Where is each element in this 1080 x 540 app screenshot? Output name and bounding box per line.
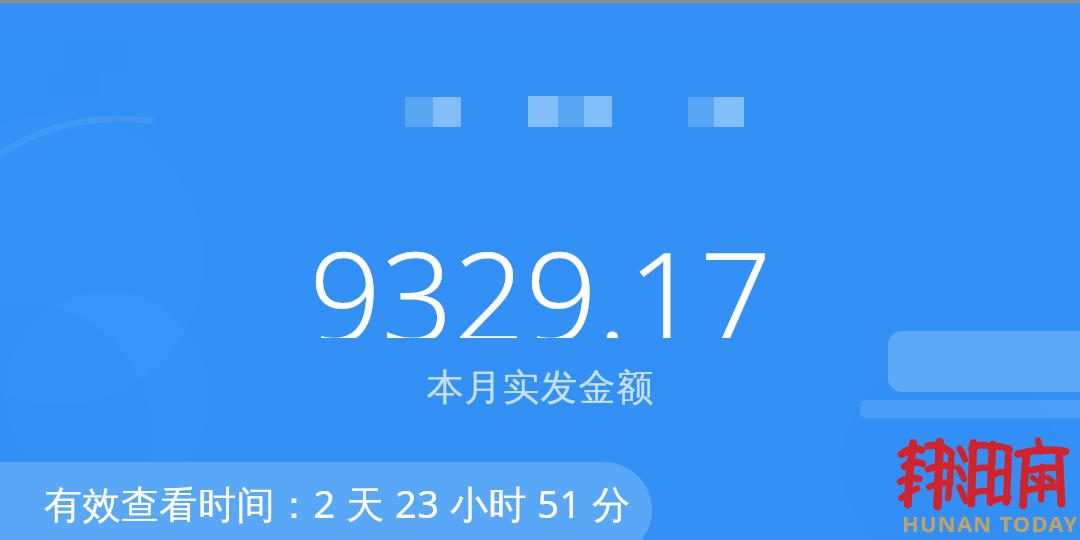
staticText: 有效查看时间：2 天 23 小时 51 分 (44, 477, 631, 529)
staticText: 本月实发金额 (426, 364, 654, 411)
staticText: HUNAN TODAY (902, 508, 1079, 538)
button[interactable]: 9329.17 (0, 208, 1080, 411)
button[interactable]: 新湖南 Hunan Today logo (894, 436, 1074, 540)
staticText: 9329.17 (309, 208, 772, 338)
button[interactable]: 有效查看时间：2 天 23 小时 51 分 (0, 462, 652, 540)
